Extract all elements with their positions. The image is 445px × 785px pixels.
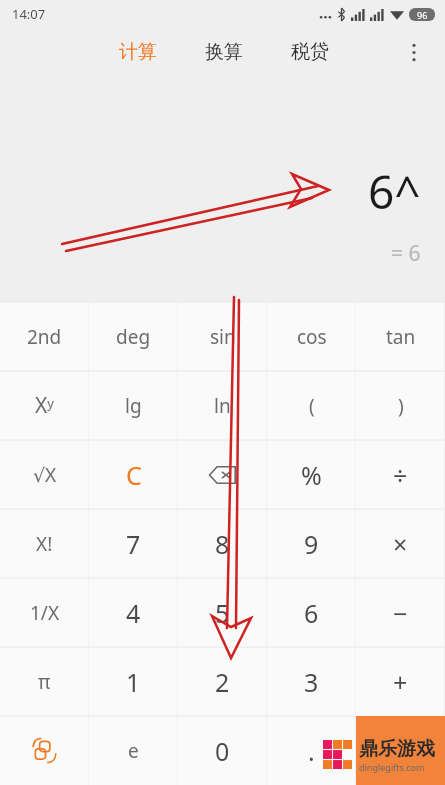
staticText: 计算 bbox=[119, 40, 157, 64]
staticText: 2 bbox=[215, 665, 230, 699]
button[interactable]: cos bbox=[267, 302, 356, 371]
staticText: = 6 bbox=[391, 239, 421, 268]
staticText: 8 bbox=[215, 527, 230, 561]
staticText: √X bbox=[33, 462, 57, 488]
staticText: 1 bbox=[126, 665, 141, 699]
staticText: 5 bbox=[215, 596, 230, 630]
staticText: ) bbox=[398, 393, 404, 419]
staticText: ( bbox=[309, 393, 315, 419]
staticText: deg bbox=[116, 324, 151, 350]
staticText: 2nd bbox=[27, 324, 62, 350]
staticText: lg bbox=[125, 393, 142, 419]
staticText: tan bbox=[386, 324, 416, 350]
staticText: dinglegifts.com bbox=[359, 761, 425, 773]
staticText: 4 bbox=[126, 596, 141, 630]
button[interactable]: e bbox=[89, 716, 178, 785]
staticText: 税贷 bbox=[291, 40, 329, 64]
button[interactable]: 税贷 bbox=[272, 28, 348, 76]
button[interactable]: − bbox=[356, 578, 445, 647]
staticText: 鼎乐游戏 bbox=[359, 737, 435, 761]
staticText: 0 bbox=[215, 734, 230, 768]
button[interactable]: X! bbox=[0, 509, 89, 578]
button[interactable]: . bbox=[267, 716, 356, 785]
button[interactable]: 1/X bbox=[0, 578, 89, 647]
button[interactable]: 5 bbox=[178, 578, 267, 647]
button[interactable]: 7 bbox=[89, 509, 178, 578]
staticText: 14:07 bbox=[12, 5, 46, 23]
staticText: 96 bbox=[417, 9, 428, 21]
button[interactable]: 0 bbox=[178, 716, 267, 785]
button[interactable]: 计算 bbox=[100, 28, 176, 76]
staticText: C bbox=[126, 458, 142, 492]
button[interactable]: 9 bbox=[267, 509, 356, 578]
button[interactable]: lg bbox=[89, 371, 178, 440]
staticText: X! bbox=[36, 531, 53, 557]
staticText: e bbox=[128, 738, 139, 764]
button[interactable]: 6 bbox=[267, 578, 356, 647]
button[interactable]: sin bbox=[178, 302, 267, 371]
staticText: sin bbox=[210, 324, 236, 350]
staticText: π bbox=[38, 669, 51, 695]
button[interactable]: ( bbox=[267, 371, 356, 440]
staticText: 9 bbox=[304, 527, 319, 561]
staticText: 3 bbox=[304, 665, 319, 699]
button[interactable]: C bbox=[89, 440, 178, 509]
staticText: 换算 bbox=[205, 40, 243, 64]
button[interactable]: 换算 bbox=[186, 28, 262, 76]
button[interactable]: 3 bbox=[267, 647, 356, 716]
button[interactable]: √X bbox=[0, 440, 89, 509]
button[interactable]: + bbox=[356, 647, 445, 716]
staticText: 6^ bbox=[368, 160, 421, 223]
button[interactable]: More options bbox=[395, 33, 433, 71]
staticText: ÷ bbox=[393, 458, 408, 492]
staticText: . bbox=[308, 734, 315, 768]
button[interactable]: 8 bbox=[178, 509, 267, 578]
staticText: 6 bbox=[304, 596, 319, 630]
button[interactable]: deg bbox=[89, 302, 178, 371]
button[interactable]: tan bbox=[356, 302, 445, 371]
button[interactable]: 1 bbox=[89, 647, 178, 716]
button[interactable]: Backspace bbox=[178, 440, 267, 509]
button[interactable]: ) bbox=[356, 371, 445, 440]
staticText: % bbox=[301, 458, 322, 492]
button[interactable]: Equals bbox=[356, 716, 445, 785]
button[interactable]: Swap units bbox=[0, 716, 89, 785]
staticText: × bbox=[393, 527, 408, 561]
staticText: 1/X bbox=[30, 600, 60, 626]
button[interactable]: ÷ bbox=[356, 440, 445, 509]
button[interactable]: π bbox=[0, 647, 89, 716]
staticText: Xy bbox=[35, 391, 54, 420]
button[interactable]: 4 bbox=[89, 578, 178, 647]
staticText: cos bbox=[297, 324, 327, 350]
button[interactable]: ln bbox=[178, 371, 267, 440]
staticText: 7 bbox=[126, 527, 141, 561]
staticText: + bbox=[393, 665, 408, 699]
staticText: − bbox=[393, 596, 408, 630]
button[interactable]: 2 bbox=[178, 647, 267, 716]
button[interactable]: % bbox=[267, 440, 356, 509]
button[interactable]: 2nd bbox=[0, 302, 89, 371]
staticText: ln bbox=[214, 393, 231, 419]
button[interactable]: × bbox=[356, 509, 445, 578]
button[interactable]: Xy bbox=[0, 371, 89, 440]
